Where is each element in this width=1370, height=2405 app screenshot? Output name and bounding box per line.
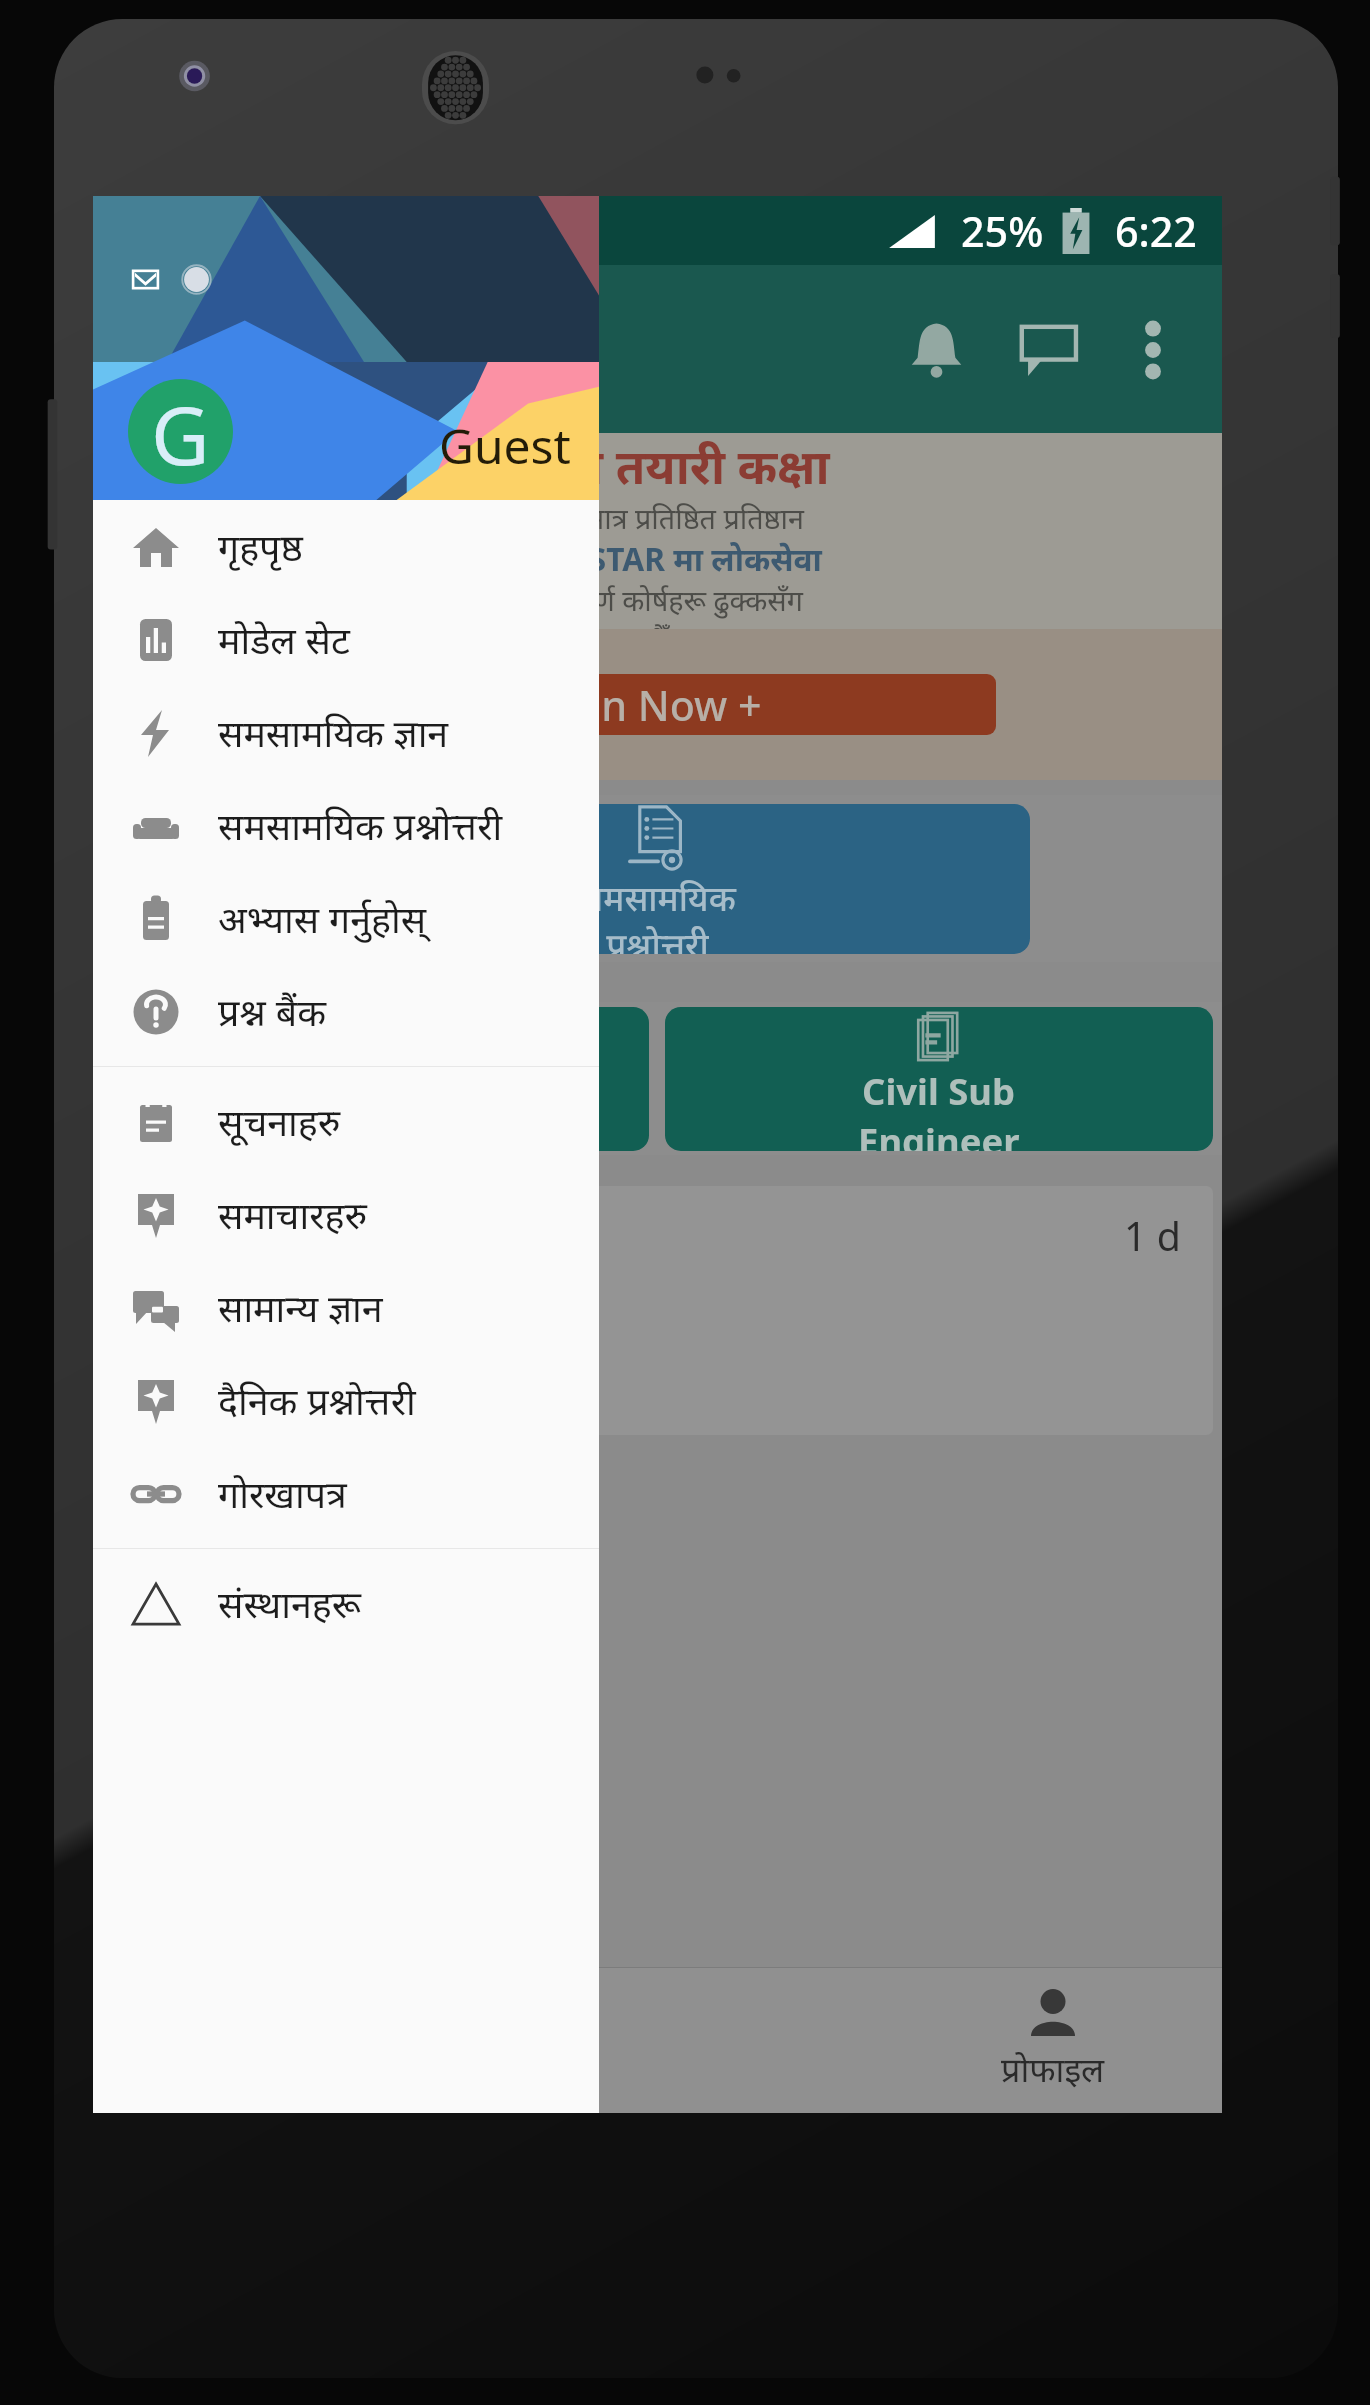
button[interactable]: समाचारहरु <box>93 1168 599 1261</box>
staticText: समाचारहरु <box>218 1189 367 1240</box>
staticText: मोडेल सेट <box>218 614 350 665</box>
staticText: प्रश्न बैंक <box>218 986 326 1037</box>
button[interactable]: Civil Sub <box>665 1007 1213 1151</box>
button[interactable]: समसामयिक ज्ञान <box>93 686 599 779</box>
staticText: गरौँ । <box>631 619 685 629</box>
staticText: Guest <box>439 413 571 478</box>
staticText: समसामयिक ज्ञान <box>218 707 449 758</box>
staticText: सामान्य ज्ञान <box>218 1282 383 1333</box>
staticText: संस्थानहरू <box>218 1578 361 1629</box>
button[interactable]: Notifications <box>880 292 993 407</box>
staticText: दैनिक प्रश्नोत्तरी <box>218 1375 416 1426</box>
button[interactable]: सामान्य ज्ञान <box>93 1261 599 1354</box>
button[interactable]: प्रोफाइल <box>883 1967 1222 2113</box>
staticText: 25% <box>961 203 1044 259</box>
button[interactable]: T <box>102 1007 649 1151</box>
button[interactable]: समसामयिक प्रश्नोत्तरी <box>93 779 599 872</box>
staticText: का सम्पूर्ण कोर्षहरू ढुक्कसँग <box>512 580 803 619</box>
button[interactable]: गृहपृष्ठ <box>93 500 599 593</box>
staticText: प्रश्नोत्तरी <box>606 921 709 954</box>
staticText: कसेवा तयारी कक्षा <box>485 433 830 498</box>
staticText: के एक मात्र प्रतिष्ठित प्रतिष्ठान <box>512 498 804 537</box>
button[interactable]: दैनिक प्रश्नोत्तरी <box>93 1354 599 1447</box>
staticText: 1 d <box>1124 1209 1181 1263</box>
staticText: 6:22 <box>1115 203 1197 259</box>
button[interactable]: More options <box>1106 292 1199 407</box>
staticText: Civil Sub <box>862 1066 1016 1116</box>
button[interactable]: प्रश्न बैंक <box>93 965 599 1058</box>
staticText: गृहपृष्ठ <box>218 521 303 572</box>
staticText: रक्षामा <box>116 1311 205 1365</box>
staticText: NING STAR मा लोकसेवा <box>494 537 822 580</box>
staticText: समसामयिक प्रश्नोत्तरी <box>218 800 503 851</box>
button[interactable]: मोडेल सेट <box>93 593 599 686</box>
staticText: G <box>151 379 210 484</box>
button[interactable]: समसामयिक <box>285 804 1030 954</box>
button[interactable]: Messages <box>993 292 1106 407</box>
staticText: Join Now + <box>553 677 762 733</box>
button[interactable]: 1 d <box>102 1186 1213 1435</box>
button[interactable]: संस्थानहरू <box>93 1557 599 1650</box>
button[interactable]: अभ्यास गर्नुहोस् <box>93 872 599 965</box>
staticText: सूचनाहरु <box>218 1096 341 1147</box>
staticText: समसामयिक <box>579 874 736 921</box>
staticText: प्रोफाइल <box>1001 2046 1105 2092</box>
button[interactable]: Join Now + <box>319 674 996 735</box>
staticText: अभ्यास गर्नुहोस् <box>218 893 427 944</box>
button[interactable]: सूचनाहरु <box>93 1075 599 1168</box>
staticText: गोरखापत्र <box>218 1468 347 1519</box>
button[interactable]: गोरखापत्र <box>93 1447 599 1540</box>
staticText: Engineer <box>858 1116 1020 1151</box>
staticText: लेख गर्नु <box>116 1257 229 1311</box>
button[interactable]: G <box>93 362 599 500</box>
